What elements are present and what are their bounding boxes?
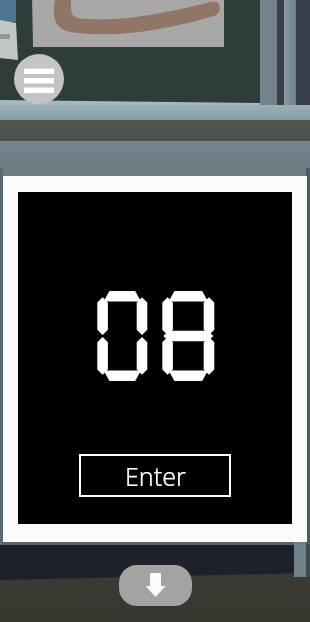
staticText: Enter <box>125 459 186 493</box>
button[interactable]: Enter <box>79 454 231 497</box>
button[interactable]: Menu <box>14 54 64 104</box>
button[interactable]: Scroll down <box>119 565 192 606</box>
